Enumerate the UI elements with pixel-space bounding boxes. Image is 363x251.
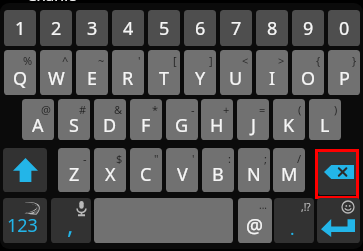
staticText: ; [264,151,267,166]
button[interactable]: Shift [3,148,47,192]
staticText: C [140,162,152,187]
staticText: 3 [87,16,98,41]
staticText: , [67,208,74,241]
button[interactable]: 1 [4,10,36,46]
staticText: D [103,113,117,138]
staticText: E [87,66,98,91]
button[interactable]: % [4,50,36,95]
staticText: Q [13,66,28,91]
button[interactable]: " [130,148,162,192]
staticText: * [152,102,159,117]
staticText: U [229,66,243,91]
button[interactable]: Enter [317,198,360,243]
staticText: 7 [231,16,242,41]
staticText: 6 [195,16,206,41]
staticText: R [122,66,134,91]
button[interactable]: Period [274,198,314,243]
button[interactable]: Voice input [51,198,91,243]
staticText: # [79,102,87,117]
staticText: J [251,113,256,138]
button[interactable]: = [237,99,269,140]
button[interactable]: 6 [184,10,216,46]
staticText: F [141,113,151,138]
staticText: 8 [267,16,278,41]
button[interactable]: $ [94,148,126,192]
button[interactable]: : [202,148,234,192]
staticText: Y [195,66,206,91]
staticText: ( [298,102,302,117]
staticText: N [247,162,261,187]
staticText: + [223,102,230,117]
staticText: 0 [339,16,350,41]
button[interactable]: 0 [328,10,360,46]
staticText: < [242,53,249,68]
staticText: 9 [303,16,314,41]
button[interactable]: 4 [112,10,144,46]
staticText: W [48,66,65,91]
button[interactable]: ; [238,148,270,192]
staticText: 5 [159,16,170,41]
button[interactable]: [ [148,50,180,95]
staticText: ^ [62,53,69,68]
staticText: ' [192,151,195,166]
button[interactable]: } [328,50,360,95]
button[interactable]: ( [273,99,305,140]
button[interactable]: ' [112,50,144,95]
staticText: = [259,102,266,117]
staticText: ,!? [301,200,311,214]
staticText: K [283,113,295,138]
button[interactable]: - [166,99,198,140]
button[interactable]: ) [309,99,341,140]
staticText: P [339,66,350,91]
staticText: 123 [7,213,38,238]
staticText: { [316,53,321,68]
button[interactable]: 8 [256,10,288,46]
button[interactable]: 3 [76,10,108,46]
button[interactable]: Backspace [318,151,358,195]
button[interactable]: > [256,50,288,95]
staticText: S [69,113,79,138]
button[interactable]: & [94,99,126,140]
button[interactable]: * [130,99,162,140]
staticText: > [278,53,285,68]
staticText: 4 [123,16,134,41]
staticText: H [210,113,224,138]
button[interactable]: 2 [40,10,72,46]
staticText: ~ [98,53,105,68]
staticText: X [105,162,116,187]
staticText: - [83,151,87,166]
staticText: ... [259,198,268,212]
staticText: 2 [51,16,62,41]
button[interactable]: { [292,50,324,95]
staticText: " [154,151,159,166]
button[interactable]: ~ [76,50,108,95]
staticText: B [212,162,224,187]
staticText: A [32,113,44,138]
button[interactable]: Space [94,198,233,243]
button[interactable]: - [58,148,90,192]
button[interactable]: < [220,50,252,95]
button[interactable]: 7 [220,10,252,46]
button[interactable]: Symbols [3,198,47,243]
staticText: [ [173,53,177,68]
staticText: I [269,66,276,91]
button[interactable]: @ [22,99,54,140]
staticText: / [297,151,302,166]
button[interactable]: ... [238,198,272,243]
staticText: @ [246,213,264,239]
button[interactable]: 5 [148,10,180,46]
button[interactable]: / [273,148,305,192]
button[interactable]: # [58,99,90,140]
staticText: 1 [15,16,26,41]
staticText: T [159,66,170,91]
button[interactable]: ' [166,148,198,192]
button[interactable]: + [201,99,233,140]
staticText: . [290,217,295,240]
staticText: G [175,113,189,138]
button[interactable]: ^ [40,50,72,95]
staticText: ) [334,102,338,117]
staticText: & [114,102,123,117]
button[interactable]: ] [184,50,216,95]
staticText: V [177,162,188,187]
button[interactable]: 9 [292,10,324,46]
